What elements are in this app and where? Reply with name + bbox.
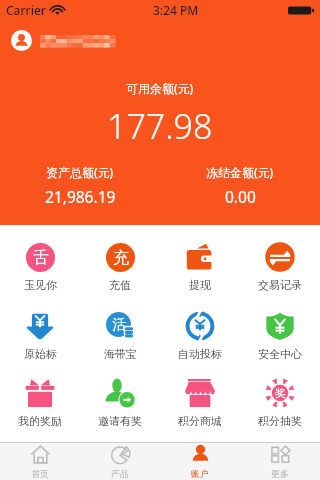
staticText: 更多 [271, 468, 289, 479]
staticText: Carrier [6, 2, 46, 18]
staticText: 177.98 [107, 103, 213, 149]
staticText: 冻结金额(元) [206, 164, 274, 180]
staticText: 首页 [31, 468, 49, 479]
button[interactable]: 充 [80, 225, 160, 308]
button[interactable]: 提现 [160, 225, 240, 308]
button[interactable]: 原始标 [0, 308, 80, 363]
staticText: 海带宝 [104, 347, 137, 361]
button[interactable]: 舌 [0, 225, 80, 308]
button[interactable]: 更多 [240, 443, 320, 480]
staticText: 我的奖励 [18, 414, 62, 428]
button[interactable]: 自动投标 [160, 308, 240, 363]
staticText: 自动投标 [178, 347, 222, 361]
staticText: 积分商城 [178, 414, 222, 428]
staticText: 0.00 [225, 186, 256, 207]
button[interactable]: 安全中心 [240, 308, 320, 363]
button[interactable]: 我的奖励 [0, 363, 80, 442]
button[interactable]: 邀请有奖 [80, 363, 160, 442]
staticText: 邀请有奖 [98, 414, 142, 428]
other: Profile [11, 30, 32, 51]
button[interactable]: 产品 [80, 443, 160, 480]
button[interactable]: 奖 [240, 363, 320, 442]
button[interactable]: 交易记录 [240, 225, 320, 308]
staticText: 积分抽奖 [258, 414, 302, 428]
staticText: 账户 [191, 468, 209, 479]
button[interactable]: 账户 [160, 443, 240, 480]
button[interactable]: 积分商城 [160, 363, 240, 442]
button[interactable]: 活 [80, 308, 160, 363]
staticText: 产品 [111, 468, 129, 479]
staticText: 原始标 [24, 347, 57, 361]
staticText: 21,986.19 [45, 186, 116, 207]
staticText: 奖 [275, 386, 286, 400]
staticText: 提现 [189, 278, 211, 292]
staticText: 玉见你 [24, 278, 57, 292]
button[interactable]: Profile [11, 30, 115, 51]
staticText: 资产总额(元) [46, 164, 114, 180]
staticText: 安全中心 [258, 347, 302, 361]
staticText: 充 [113, 248, 129, 268]
staticText: 3:24 PM [153, 2, 199, 18]
staticText: 舌 [33, 248, 49, 268]
staticText: 可用余额(元) [126, 80, 194, 96]
staticText: 充值 [109, 278, 131, 292]
staticText: 活 [112, 316, 126, 334]
staticText: 交易记录 [258, 278, 302, 292]
button[interactable]: 首页 [0, 443, 80, 480]
